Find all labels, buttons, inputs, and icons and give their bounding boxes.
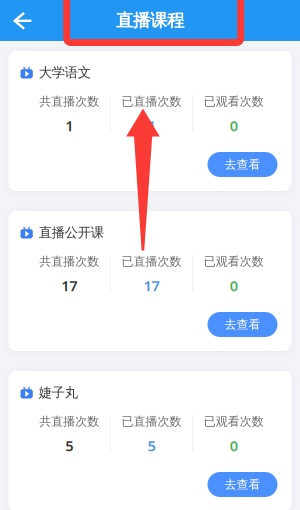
button[interactable]: 去查看 <box>207 312 277 337</box>
staticText: 已直播次数 <box>121 94 181 109</box>
staticText: 已观看次数 <box>204 254 264 269</box>
staticText: 0 <box>230 116 238 135</box>
staticText: 已观看次数 <box>204 414 264 429</box>
staticText: 已观看次数 <box>204 94 264 109</box>
staticText: 17 <box>61 276 77 295</box>
staticText: 0 <box>230 436 238 455</box>
staticText: 已直播次数 <box>121 414 181 429</box>
staticText: 去查看 <box>224 157 260 172</box>
staticText: 0 <box>230 276 238 295</box>
button[interactable]: 去查看 <box>207 152 277 177</box>
staticText: 共直播次数 <box>39 94 99 109</box>
staticText: 1 <box>147 116 155 135</box>
staticText: 直播课程 <box>116 10 184 31</box>
staticText: 5 <box>147 436 155 455</box>
staticText: 5 <box>65 436 73 455</box>
staticText: 17 <box>143 276 159 295</box>
staticText: 大学语文 <box>39 64 91 81</box>
staticText: 去查看 <box>224 477 260 492</box>
button[interactable]: Back <box>0 0 45 42</box>
staticText: 1 <box>65 116 73 135</box>
button[interactable]: 去查看 <box>207 472 277 497</box>
staticText: 直播公开课 <box>39 224 104 241</box>
staticText: 去查看 <box>224 317 260 332</box>
staticText: 共直播次数 <box>39 254 99 269</box>
staticText: 已直播次数 <box>121 254 181 269</box>
staticText: 婕子丸 <box>39 384 78 401</box>
staticText: 共直播次数 <box>39 414 99 429</box>
